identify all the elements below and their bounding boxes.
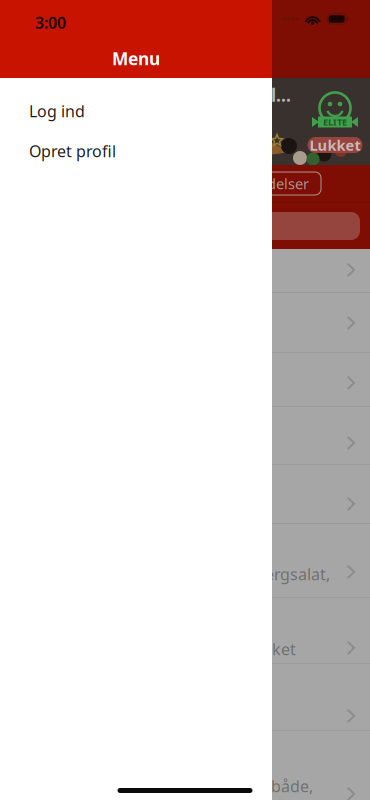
staticText: Menu — [112, 47, 160, 70]
button[interactable] — [0, 664, 370, 731]
button[interactable] — [0, 353, 370, 407]
staticText: Lukket — [245, 638, 296, 660]
staticText: Anmeldelser — [223, 174, 309, 193]
staticText: Pizzeria Perl... — [170, 83, 291, 106]
staticText: ELITE — [323, 116, 347, 128]
button[interactable] — [0, 249, 370, 293]
staticText: Lukket — [309, 135, 360, 155]
staticText: Isbergsalat, — [242, 563, 330, 585]
button[interactable]: Kebabbåde, — [0, 731, 370, 800]
button[interactable] — [0, 465, 370, 524]
button[interactable]: Log ind — [0, 91, 272, 131]
button[interactable] — [0, 407, 370, 465]
button[interactable] — [0, 293, 370, 353]
staticText: Kebabbåde, — [223, 775, 313, 797]
button[interactable]: Opret profil — [0, 131, 272, 171]
button[interactable]: Isbergsalat, — [0, 524, 370, 598]
staticText: 3:00 — [35, 12, 66, 33]
button[interactable]: Lukket — [0, 598, 370, 664]
button[interactable]: Anmeldelser — [211, 172, 321, 195]
staticText: Opret profil — [29, 140, 116, 162]
staticText: Log ind — [29, 100, 85, 122]
